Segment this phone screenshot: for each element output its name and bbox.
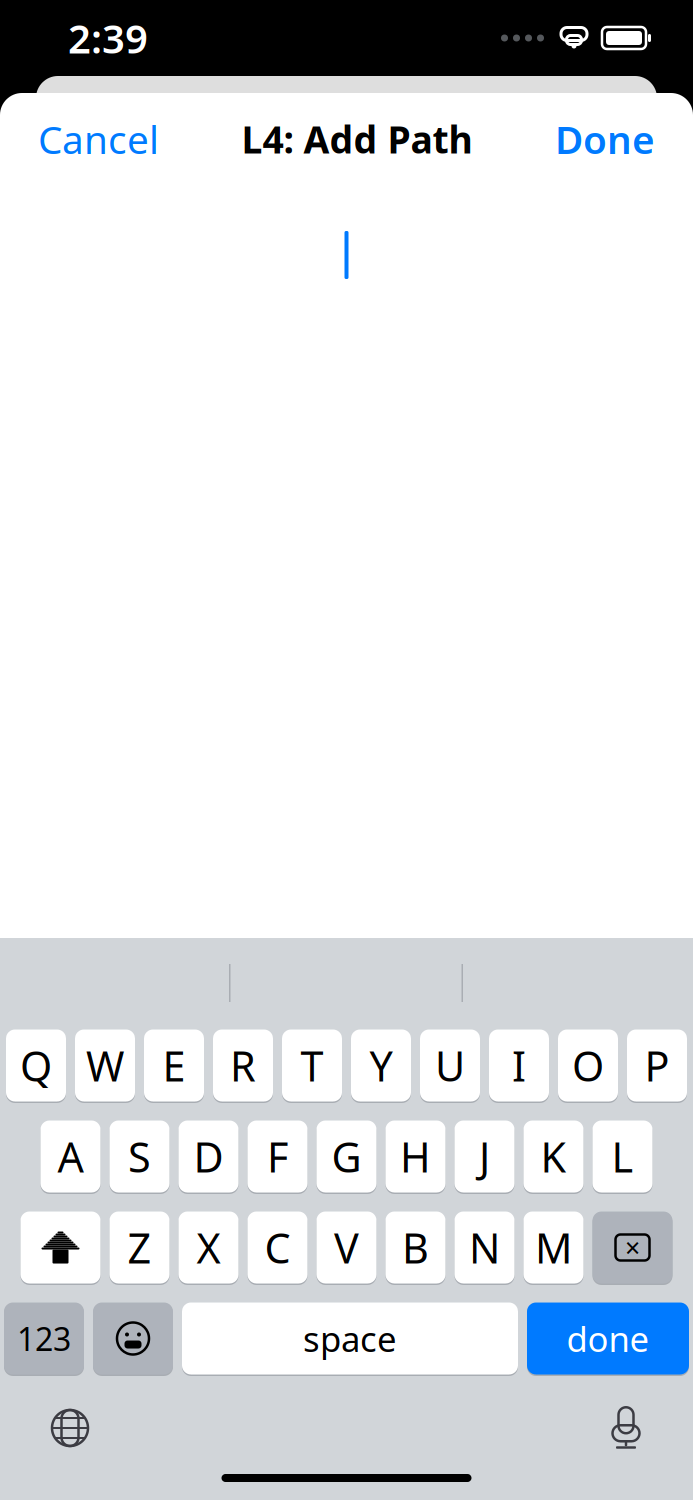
- staticText: S: [128, 1129, 151, 1184]
- button[interactable]: P: [627, 1028, 687, 1103]
- button[interactable]: Q: [6, 1028, 66, 1103]
- button[interactable]: Numbers: [4, 1301, 84, 1376]
- button[interactable]: Z: [109, 1210, 169, 1285]
- staticText: E: [162, 1038, 185, 1093]
- button[interactable]: B: [385, 1210, 445, 1285]
- button[interactable]: A: [40, 1119, 100, 1194]
- staticText: C: [264, 1220, 290, 1275]
- staticText: Z: [127, 1220, 151, 1275]
- staticText: B: [402, 1220, 429, 1275]
- button[interactable]: D: [178, 1119, 238, 1194]
- staticText: ×: [625, 1230, 640, 1265]
- button[interactable]: Next keyboard: [34, 1400, 106, 1456]
- staticText: O: [572, 1038, 604, 1093]
- button[interactable]: E: [144, 1028, 204, 1103]
- button[interactable]: U: [420, 1028, 480, 1103]
- button[interactable]: Cancel: [28, 105, 169, 173]
- button[interactable]: V: [316, 1210, 376, 1285]
- staticText: Q: [20, 1038, 52, 1093]
- staticText: G: [331, 1129, 361, 1184]
- staticText: L: [611, 1129, 633, 1184]
- button[interactable]: T: [282, 1028, 342, 1103]
- staticText: R: [230, 1038, 256, 1093]
- button[interactable]: H: [385, 1119, 445, 1194]
- button[interactable]: Y: [351, 1028, 411, 1103]
- staticText: N: [469, 1220, 500, 1275]
- button[interactable]: O: [558, 1028, 618, 1103]
- staticText: X: [196, 1220, 220, 1275]
- button[interactable]: M: [523, 1210, 583, 1285]
- staticText: V: [334, 1220, 359, 1275]
- button[interactable]: space: [182, 1301, 518, 1376]
- button[interactable]: R: [213, 1028, 273, 1103]
- button[interactable]: W: [75, 1028, 135, 1103]
- staticText: H: [400, 1129, 431, 1184]
- button[interactable]: S: [109, 1119, 169, 1194]
- staticText: K: [540, 1129, 566, 1184]
- button[interactable]: N: [454, 1210, 514, 1285]
- button[interactable]: I: [489, 1028, 549, 1103]
- staticText: 2:39: [68, 11, 148, 64]
- button[interactable]: Done: [545, 105, 665, 173]
- staticText: Cancel: [38, 113, 159, 165]
- staticText: 123: [17, 1317, 71, 1360]
- staticText: done: [566, 1315, 649, 1361]
- button[interactable]: J: [454, 1119, 514, 1194]
- staticText: space: [303, 1315, 397, 1361]
- staticText: A: [57, 1129, 83, 1184]
- button[interactable]: Delete: [592, 1210, 672, 1285]
- staticText: I: [512, 1038, 526, 1093]
- staticText: F: [267, 1129, 288, 1184]
- staticText: Y: [369, 1038, 392, 1093]
- button[interactable]: G: [316, 1119, 376, 1194]
- button[interactable]: done: [527, 1301, 689, 1376]
- staticText: L4: Add Path: [241, 114, 472, 164]
- staticText: T: [300, 1038, 323, 1093]
- button[interactable]: X: [178, 1210, 238, 1285]
- staticText: P: [644, 1038, 669, 1093]
- button[interactable]: Shift: [20, 1210, 100, 1285]
- staticText: D: [193, 1129, 223, 1184]
- staticText: Done: [555, 113, 655, 165]
- button[interactable]: C: [247, 1210, 307, 1285]
- staticText: U: [435, 1038, 465, 1093]
- staticText: J: [479, 1129, 490, 1184]
- button[interactable]: K: [523, 1119, 583, 1194]
- button[interactable]: Dictation: [593, 1400, 659, 1456]
- staticText: M: [535, 1220, 572, 1275]
- button[interactable]: L: [592, 1119, 652, 1194]
- staticText: W: [86, 1038, 124, 1093]
- button[interactable]: Emoji: [93, 1301, 173, 1376]
- button[interactable]: F: [247, 1119, 307, 1194]
